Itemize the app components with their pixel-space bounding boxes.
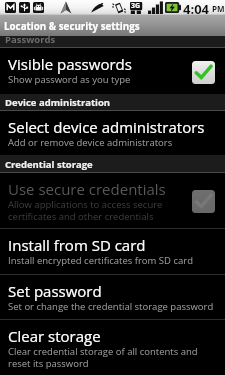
staticText: Install from SD card [8, 235, 146, 255]
staticText: Show password as you type [8, 73, 131, 86]
other: Visible passwords toggle [192, 61, 215, 84]
button[interactable]: Clear storage [0, 320, 225, 375]
button[interactable]: Use secure credentials [0, 173, 225, 228]
button[interactable]: Visible passwords [0, 48, 225, 94]
other: Use secure credentials toggle [192, 190, 215, 213]
staticText: Add or remove device administrators [8, 136, 173, 149]
staticText: PM [212, 3, 225, 14]
button[interactable]: Select device administrators [0, 111, 225, 155]
staticText: Clear credential storage of all contents… [8, 345, 198, 369]
staticText: Device administration [5, 96, 111, 109]
staticText: 3G [131, 1, 141, 11]
staticText: 4:04 [183, 0, 210, 15]
staticText: Passwords [5, 33, 56, 45]
staticText: Set or change the credential storage pas… [8, 300, 214, 313]
button[interactable]: Set password [0, 275, 225, 319]
staticText: Install encrypted certificates from SD c… [8, 254, 193, 267]
staticText: Location & security settings [4, 20, 140, 33]
staticText: Select device administrators [8, 117, 205, 137]
staticText: Set password [8, 281, 102, 301]
staticText: Allow applications to access secure cert… [8, 198, 163, 222]
staticText: Clear storage [8, 326, 101, 346]
button[interactable]: Install from SD card [0, 229, 225, 274]
staticText: Credential storage [5, 158, 93, 171]
staticText: Use secure credentials [8, 179, 166, 199]
staticText: Visible passwords [8, 54, 132, 74]
